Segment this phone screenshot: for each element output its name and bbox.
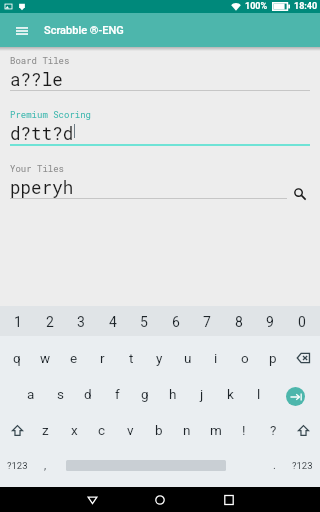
staticText: 3 bbox=[77, 314, 85, 330]
staticText: 6 bbox=[172, 314, 180, 330]
button[interactable]: l bbox=[245, 375, 273, 413]
staticText: k bbox=[227, 386, 234, 402]
button[interactable]: 6 bbox=[160, 307, 192, 337]
button[interactable]: 2 bbox=[34, 307, 66, 337]
button[interactable]: d bbox=[74, 375, 102, 413]
staticText: 100% bbox=[245, 1, 268, 12]
button[interactable]: 8 bbox=[223, 307, 255, 337]
button[interactable]: y bbox=[145, 339, 173, 377]
button[interactable]: 7 bbox=[191, 307, 223, 337]
staticText: ! bbox=[242, 422, 246, 438]
staticText: v bbox=[127, 422, 134, 438]
button[interactable]: h bbox=[159, 375, 187, 413]
button[interactable]: ? bbox=[259, 411, 287, 449]
staticText: q bbox=[13, 350, 21, 366]
button[interactable]: , bbox=[35, 447, 55, 484]
staticText: , bbox=[44, 459, 47, 472]
button[interactable]: 0 bbox=[286, 307, 318, 337]
staticText: Scrabble ®-ENG bbox=[44, 24, 124, 37]
staticText: 8 bbox=[235, 314, 243, 330]
staticText: 7 bbox=[203, 314, 211, 330]
staticText: s bbox=[57, 386, 64, 402]
staticText: ?123 bbox=[7, 460, 28, 471]
button[interactable]: t bbox=[117, 339, 145, 377]
staticText: f bbox=[115, 386, 120, 402]
button[interactable]: i bbox=[202, 339, 230, 377]
staticText: m bbox=[210, 422, 222, 438]
button[interactable]: ?123 bbox=[285, 447, 320, 484]
button[interactable]: n bbox=[173, 411, 201, 449]
button[interactable]: w bbox=[31, 339, 59, 377]
button[interactable]: 1 bbox=[2, 307, 34, 337]
button[interactable]: k bbox=[216, 375, 244, 413]
button[interactable]: f bbox=[103, 375, 131, 413]
button[interactable]: s bbox=[46, 375, 74, 413]
staticText: a bbox=[27, 386, 35, 402]
button[interactable]: 9 bbox=[254, 307, 286, 337]
staticText: g bbox=[141, 386, 149, 402]
staticText: Premium Scoring bbox=[10, 109, 92, 121]
button[interactable]: b bbox=[145, 411, 173, 449]
staticText: x bbox=[71, 422, 78, 438]
staticText: b bbox=[155, 422, 163, 438]
button[interactable]: c bbox=[88, 411, 116, 449]
staticText: d bbox=[84, 386, 92, 402]
staticText: d?tt?d bbox=[10, 122, 74, 145]
button[interactable]: r bbox=[88, 339, 116, 377]
button[interactable]: 5 bbox=[128, 307, 160, 337]
staticText: e bbox=[70, 350, 78, 366]
staticText: r bbox=[100, 350, 105, 366]
button[interactable]: Shift bbox=[288, 411, 319, 449]
button[interactable]: Shift bbox=[2, 411, 33, 449]
button[interactable]: v bbox=[116, 411, 144, 449]
button[interactable]: Your Tiles bbox=[0, 163, 320, 207]
button[interactable]: q bbox=[3, 339, 31, 377]
staticText: j bbox=[200, 386, 204, 402]
button[interactable]: ! bbox=[230, 411, 258, 449]
button[interactable]: a bbox=[17, 375, 45, 413]
button[interactable]: g bbox=[131, 375, 159, 413]
button[interactable]: x bbox=[60, 411, 88, 449]
staticText: 5 bbox=[140, 314, 148, 330]
button[interactable]: Back bbox=[74, 487, 110, 512]
staticText: 9 bbox=[266, 314, 274, 330]
button[interactable]: Home bbox=[142, 487, 178, 512]
button[interactable]: ?123 bbox=[0, 447, 35, 484]
button[interactable]: 3 bbox=[65, 307, 97, 337]
staticText: 0 bbox=[298, 314, 306, 330]
staticText: h bbox=[169, 386, 177, 402]
staticText: . bbox=[273, 459, 276, 472]
staticText: pperyh bbox=[10, 176, 74, 199]
staticText: n bbox=[183, 422, 191, 438]
button[interactable]: Board Tiles bbox=[0, 55, 320, 99]
button[interactable]: m bbox=[202, 411, 230, 449]
staticText: 18:40 bbox=[294, 1, 318, 12]
staticText: y bbox=[156, 350, 163, 366]
button[interactable]: o bbox=[231, 339, 259, 377]
staticText: o bbox=[241, 350, 249, 366]
button[interactable]: Open navigation drawer bbox=[5, 14, 38, 47]
button[interactable]: j bbox=[188, 375, 216, 413]
staticText: 2 bbox=[46, 314, 54, 330]
button[interactable]: Recents bbox=[211, 487, 247, 512]
staticText: w bbox=[40, 350, 51, 366]
button[interactable]: Enter bbox=[279, 377, 312, 415]
staticText: t bbox=[129, 350, 134, 366]
staticText: l bbox=[257, 386, 261, 402]
staticText: ? bbox=[270, 422, 277, 438]
button[interactable]: z bbox=[31, 411, 59, 449]
staticText: ?123 bbox=[292, 460, 313, 471]
staticText: 1 bbox=[14, 314, 22, 330]
button[interactable]: Premium Scoring bbox=[0, 109, 320, 153]
staticText: Your Tiles bbox=[10, 163, 65, 175]
button[interactable]: Search bbox=[288, 182, 312, 206]
staticText: a??le bbox=[10, 68, 63, 91]
button[interactable]: 4 bbox=[97, 307, 129, 337]
button[interactable]: p bbox=[259, 339, 287, 377]
button[interactable]: Space bbox=[66, 447, 226, 484]
button[interactable]: Backspace bbox=[287, 339, 320, 377]
button[interactable]: . bbox=[264, 447, 284, 484]
button[interactable]: e bbox=[60, 339, 88, 377]
button[interactable]: u bbox=[174, 339, 202, 377]
staticText: p bbox=[269, 350, 277, 366]
